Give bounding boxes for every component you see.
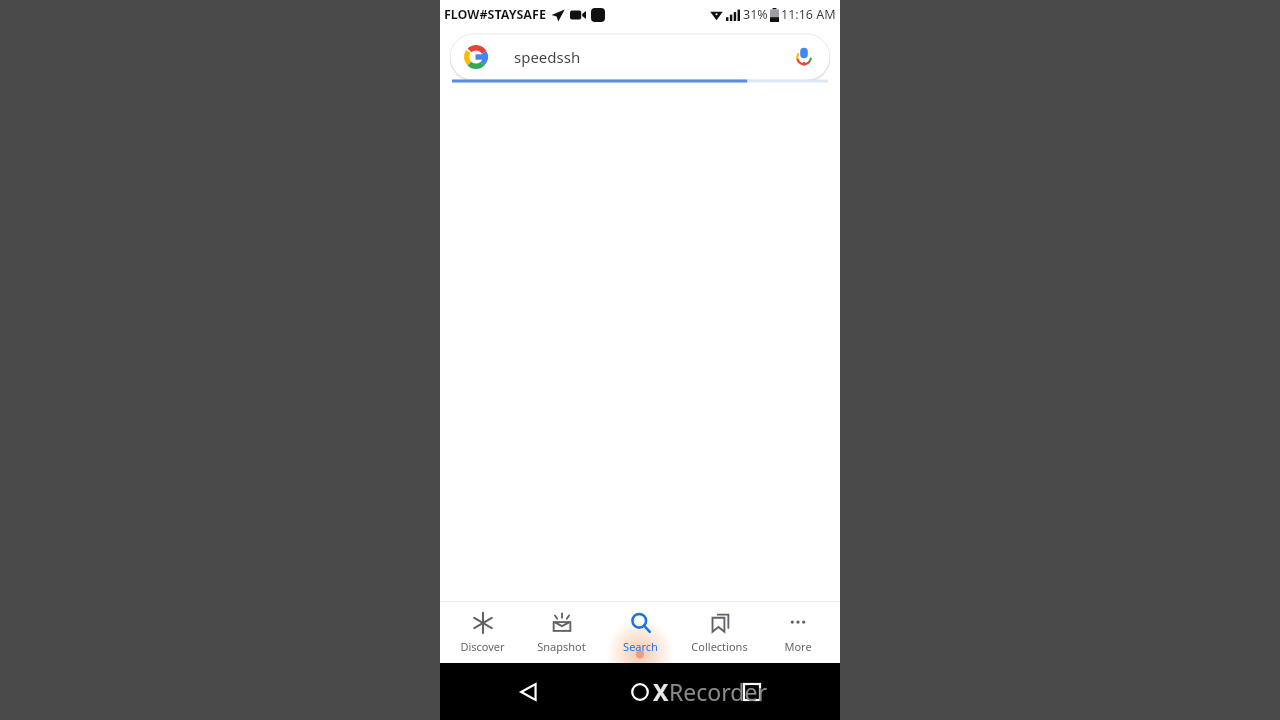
button[interactable]: Recent apps [728, 668, 776, 716]
button[interactable]: Back [504, 668, 552, 716]
staticText: speedssh [514, 47, 581, 67]
button[interactable]: Voice search [788, 41, 820, 73]
staticText: X [653, 676, 669, 707]
staticText: Search [623, 639, 658, 654]
button[interactable]: Discover [445, 602, 519, 663]
button[interactable]: Collections [682, 602, 756, 663]
staticText: Collections [691, 639, 748, 654]
button[interactable]: speedssh [450, 34, 830, 80]
staticText: 31% [743, 6, 768, 23]
button[interactable]: Search [603, 602, 677, 663]
button[interactable]: More [761, 602, 835, 663]
staticText: Recorder [669, 676, 767, 707]
staticText: Snapshot [537, 639, 586, 654]
staticText: FLOW#STAYSAFE [444, 6, 546, 23]
button[interactable]: Snapshot [524, 602, 598, 663]
staticText: 11:16 AM [781, 6, 836, 23]
button[interactable]: Home [616, 668, 664, 716]
staticText: More [784, 639, 812, 654]
staticText: Discover [460, 639, 505, 654]
